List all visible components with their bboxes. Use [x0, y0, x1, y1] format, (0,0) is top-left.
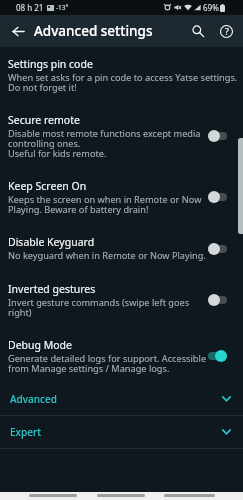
button[interactable]: Back — [29, 494, 77, 497]
staticText: 08 h 21 — [16, 2, 44, 13]
staticText: Disable most remote functions except med… — [8, 127, 201, 159]
button[interactable]: Keep Screen On — [0, 179, 243, 215]
staticText: Advanced — [10, 392, 57, 406]
button[interactable]: Recents — [164, 494, 215, 497]
staticText: Disable Keyguard — [8, 235, 95, 249]
button[interactable]: Toggle off — [208, 294, 227, 306]
staticText: When set asks for a pin code to access Y… — [8, 71, 238, 93]
staticText: Expert — [10, 425, 41, 439]
button[interactable]: Secure remote — [0, 113, 243, 159]
staticText: Inverted gestures — [8, 282, 96, 296]
staticText: No keyguard when in Remote or Now Playin… — [8, 249, 206, 262]
button[interactable]: Help — [212, 17, 240, 45]
button[interactable]: Settings pin code — [0, 57, 243, 93]
button[interactable]: Toggle off — [208, 130, 227, 142]
button[interactable]: Search — [184, 17, 212, 45]
staticText: 69% — [203, 2, 219, 13]
staticText: Secure remote — [8, 113, 80, 127]
button[interactable]: Expert — [0, 416, 243, 448]
staticText: Invert gesture commands (swipe left goes… — [8, 296, 190, 318]
button[interactable]: Toggle off — [208, 243, 227, 255]
button[interactable]: Advanced — [0, 383, 243, 415]
button[interactable]: Back — [4, 17, 32, 45]
staticText: ? — [225, 26, 229, 38]
button[interactable]: Toggle off — [208, 191, 227, 203]
button[interactable]: Toggle on — [208, 350, 227, 362]
button[interactable]: Home — [97, 494, 145, 497]
staticText: Settings pin code — [8, 57, 93, 71]
button[interactable]: Debug Mode — [0, 338, 243, 374]
button[interactable]: Inverted gestures — [0, 282, 243, 318]
staticText: Keeps the screen on when in Remote or No… — [8, 193, 202, 215]
button[interactable]: Disable Keyguard — [0, 235, 243, 262]
staticText: Advanced settings — [34, 22, 153, 40]
staticText: Debug Mode — [8, 338, 72, 352]
staticText: Keep Screen On — [8, 179, 87, 193]
staticText: Generate detailed logs for support. Acce… — [8, 352, 207, 374]
staticText: -13° — [56, 3, 69, 12]
